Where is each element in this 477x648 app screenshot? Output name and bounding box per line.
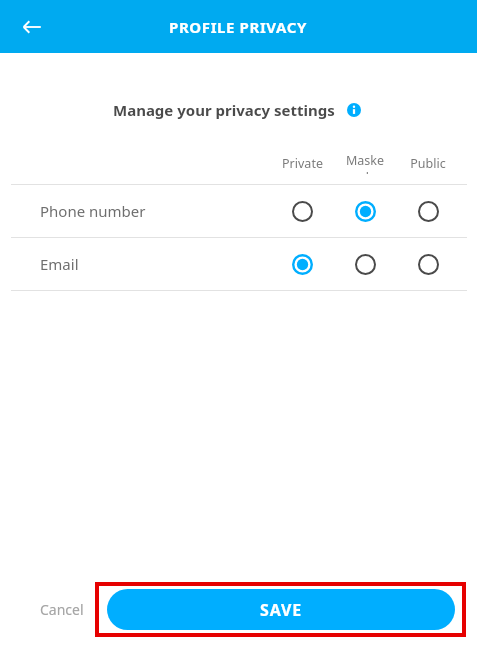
button[interactable]: Private Email [280,242,324,286]
button[interactable]: Masked Phone number [343,189,387,233]
button[interactable]: Phone number [0,185,477,237]
staticText: SAVE [260,599,302,621]
button[interactable]: Cancel [32,592,92,627]
staticText: Public [410,155,446,172]
staticText: Masked [343,152,387,174]
staticText: Phone number [40,201,146,221]
button[interactable]: Private Phone number [280,189,324,233]
button[interactable]: Masked Email [343,242,387,286]
staticText: PROFILE PRIVACY [169,17,308,37]
button[interactable]: Back [10,5,54,49]
button[interactable]: Public Phone number [406,189,450,233]
staticText: Private [282,155,323,172]
button[interactable]: SAVE [107,589,455,630]
button[interactable]: Public Email [406,242,450,286]
button[interactable]: More information [343,99,365,121]
staticText: Manage your privacy settings [113,100,335,120]
button[interactable]: Email [0,238,477,290]
staticText: Email [40,254,79,274]
